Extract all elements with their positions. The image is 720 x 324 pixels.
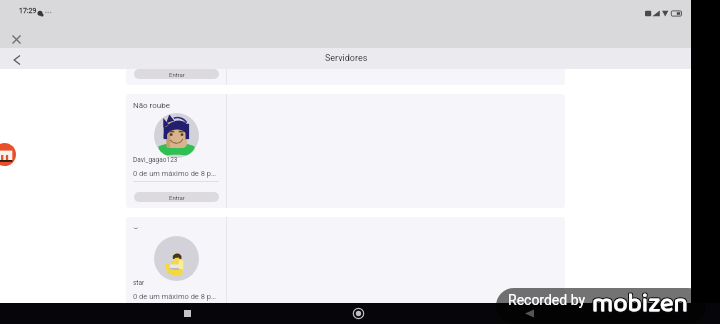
staticText: mobizen bbox=[593, 288, 689, 318]
staticText: star bbox=[133, 279, 145, 287]
button[interactable]: Back bbox=[6, 49, 27, 70]
button[interactable]: ⌣ bbox=[126, 217, 565, 324]
staticText: Recorded by bbox=[508, 292, 586, 308]
staticText: 0 de um máximo de 8 p… bbox=[133, 169, 217, 178]
staticText: 0 de um máximo de 8 p… bbox=[133, 292, 217, 301]
staticText: Davi_gagao123 bbox=[133, 156, 178, 164]
button[interactable]: Entrar bbox=[126, 69, 565, 85]
staticText: mobizen bbox=[592, 288, 688, 318]
button[interactable]: Não roube bbox=[126, 94, 565, 208]
button[interactable]: Entrar bbox=[134, 192, 219, 202]
button[interactable]: Entrar bbox=[134, 315, 219, 324]
staticText: Não roube bbox=[133, 101, 170, 110]
staticText: mobizen bbox=[593, 288, 689, 319]
button[interactable]: Entrar bbox=[134, 69, 219, 79]
staticText: mobizen bbox=[593, 288, 689, 320]
staticText: 17:29 bbox=[19, 7, 37, 15]
staticText: mobizen bbox=[591, 288, 687, 318]
staticText: mobizen bbox=[591, 288, 687, 320]
staticText: Entrar bbox=[169, 194, 185, 201]
staticText: mobizen bbox=[592, 288, 688, 320]
staticText: ⌣ bbox=[133, 224, 139, 232]
button[interactable]: Home bbox=[351, 306, 366, 321]
staticText: Servidores bbox=[325, 53, 368, 64]
staticText: Entrar bbox=[169, 71, 185, 78]
staticText: mobizen bbox=[592, 288, 688, 319]
staticText: mobizen bbox=[591, 288, 687, 319]
button[interactable]: Close bbox=[5, 28, 27, 50]
button[interactable]: Recent apps bbox=[181, 307, 194, 320]
button[interactable]: Mobizen recorder bbox=[0, 143, 16, 166]
button[interactable]: Back bbox=[523, 307, 536, 320]
